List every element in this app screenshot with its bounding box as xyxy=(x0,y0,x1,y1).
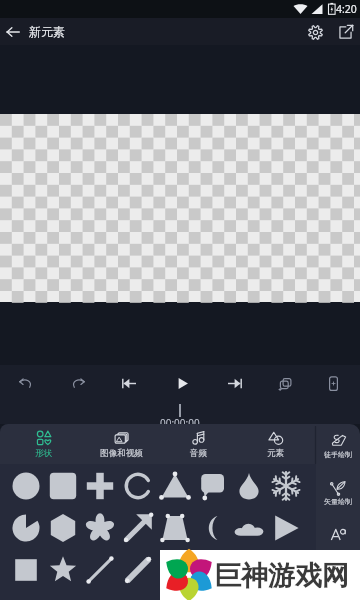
staticText: 巨神游戏网 xyxy=(214,559,349,593)
button[interactable]: Shape 16 xyxy=(8,552,44,588)
button[interactable]: Shape 17 xyxy=(45,552,81,588)
staticText: 元素 xyxy=(267,448,284,459)
button[interactable]: Skip to start xyxy=(114,369,142,397)
button[interactable]: Shape 12 xyxy=(157,510,193,546)
button[interactable]: 音频 xyxy=(160,424,236,464)
button[interactable]: Back xyxy=(0,19,26,45)
staticText: 00:00:00 xyxy=(160,416,200,430)
button[interactable]: Shape 7 xyxy=(268,468,304,504)
button[interactable]: Redo xyxy=(64,369,92,397)
button[interactable]: Shape 5 xyxy=(194,468,230,504)
button[interactable]: Play xyxy=(168,369,196,397)
button[interactable]: Shape 4 xyxy=(157,468,193,504)
staticText: 图像和视频 xyxy=(100,448,143,459)
button[interactable]: Shape 2 xyxy=(82,468,118,504)
button[interactable]: Shape 15 xyxy=(268,510,304,546)
staticText: 新元素 xyxy=(29,24,65,39)
button[interactable]: Loop xyxy=(271,369,299,397)
button[interactable]: Shape 6 xyxy=(231,468,267,504)
button[interactable]: Settings xyxy=(302,19,328,45)
staticText: 徒手绘制 xyxy=(324,450,352,459)
button[interactable]: 形状 xyxy=(5,424,81,464)
button[interactable]: Undo xyxy=(11,369,39,397)
button[interactable]: Export xyxy=(332,19,358,45)
button[interactable]: Shape 18 xyxy=(82,552,118,588)
button[interactable]: Shape 10 xyxy=(82,510,118,546)
staticText: 矢量绘制 xyxy=(324,497,352,506)
button[interactable]: Add text xyxy=(316,526,360,560)
button[interactable]: 矢量绘制 xyxy=(316,479,360,513)
button[interactable]: Shape 11 xyxy=(120,510,156,546)
button[interactable]: 元素 xyxy=(237,424,313,464)
button[interactable]: Shape 14 xyxy=(231,510,267,546)
button[interactable]: 图像和视频 xyxy=(83,424,159,464)
button[interactable]: Shape 1 xyxy=(45,468,81,504)
button[interactable]: Skip to end xyxy=(221,369,249,397)
button[interactable]: Shape 13 xyxy=(194,510,230,546)
button[interactable]: Shape 0 xyxy=(8,468,44,504)
button[interactable]: 徒手绘制 xyxy=(316,432,360,466)
staticText: 音频 xyxy=(190,448,207,459)
button[interactable]: Bookmark xyxy=(319,369,347,397)
button[interactable]: Shape 9 xyxy=(45,510,81,546)
button[interactable]: Shape 3 xyxy=(120,468,156,504)
button[interactable]: Shape 8 xyxy=(8,510,44,546)
button[interactable]: Shape 19 xyxy=(120,552,156,588)
staticText: 形状 xyxy=(35,448,52,459)
staticText: 4:20 xyxy=(336,2,357,16)
